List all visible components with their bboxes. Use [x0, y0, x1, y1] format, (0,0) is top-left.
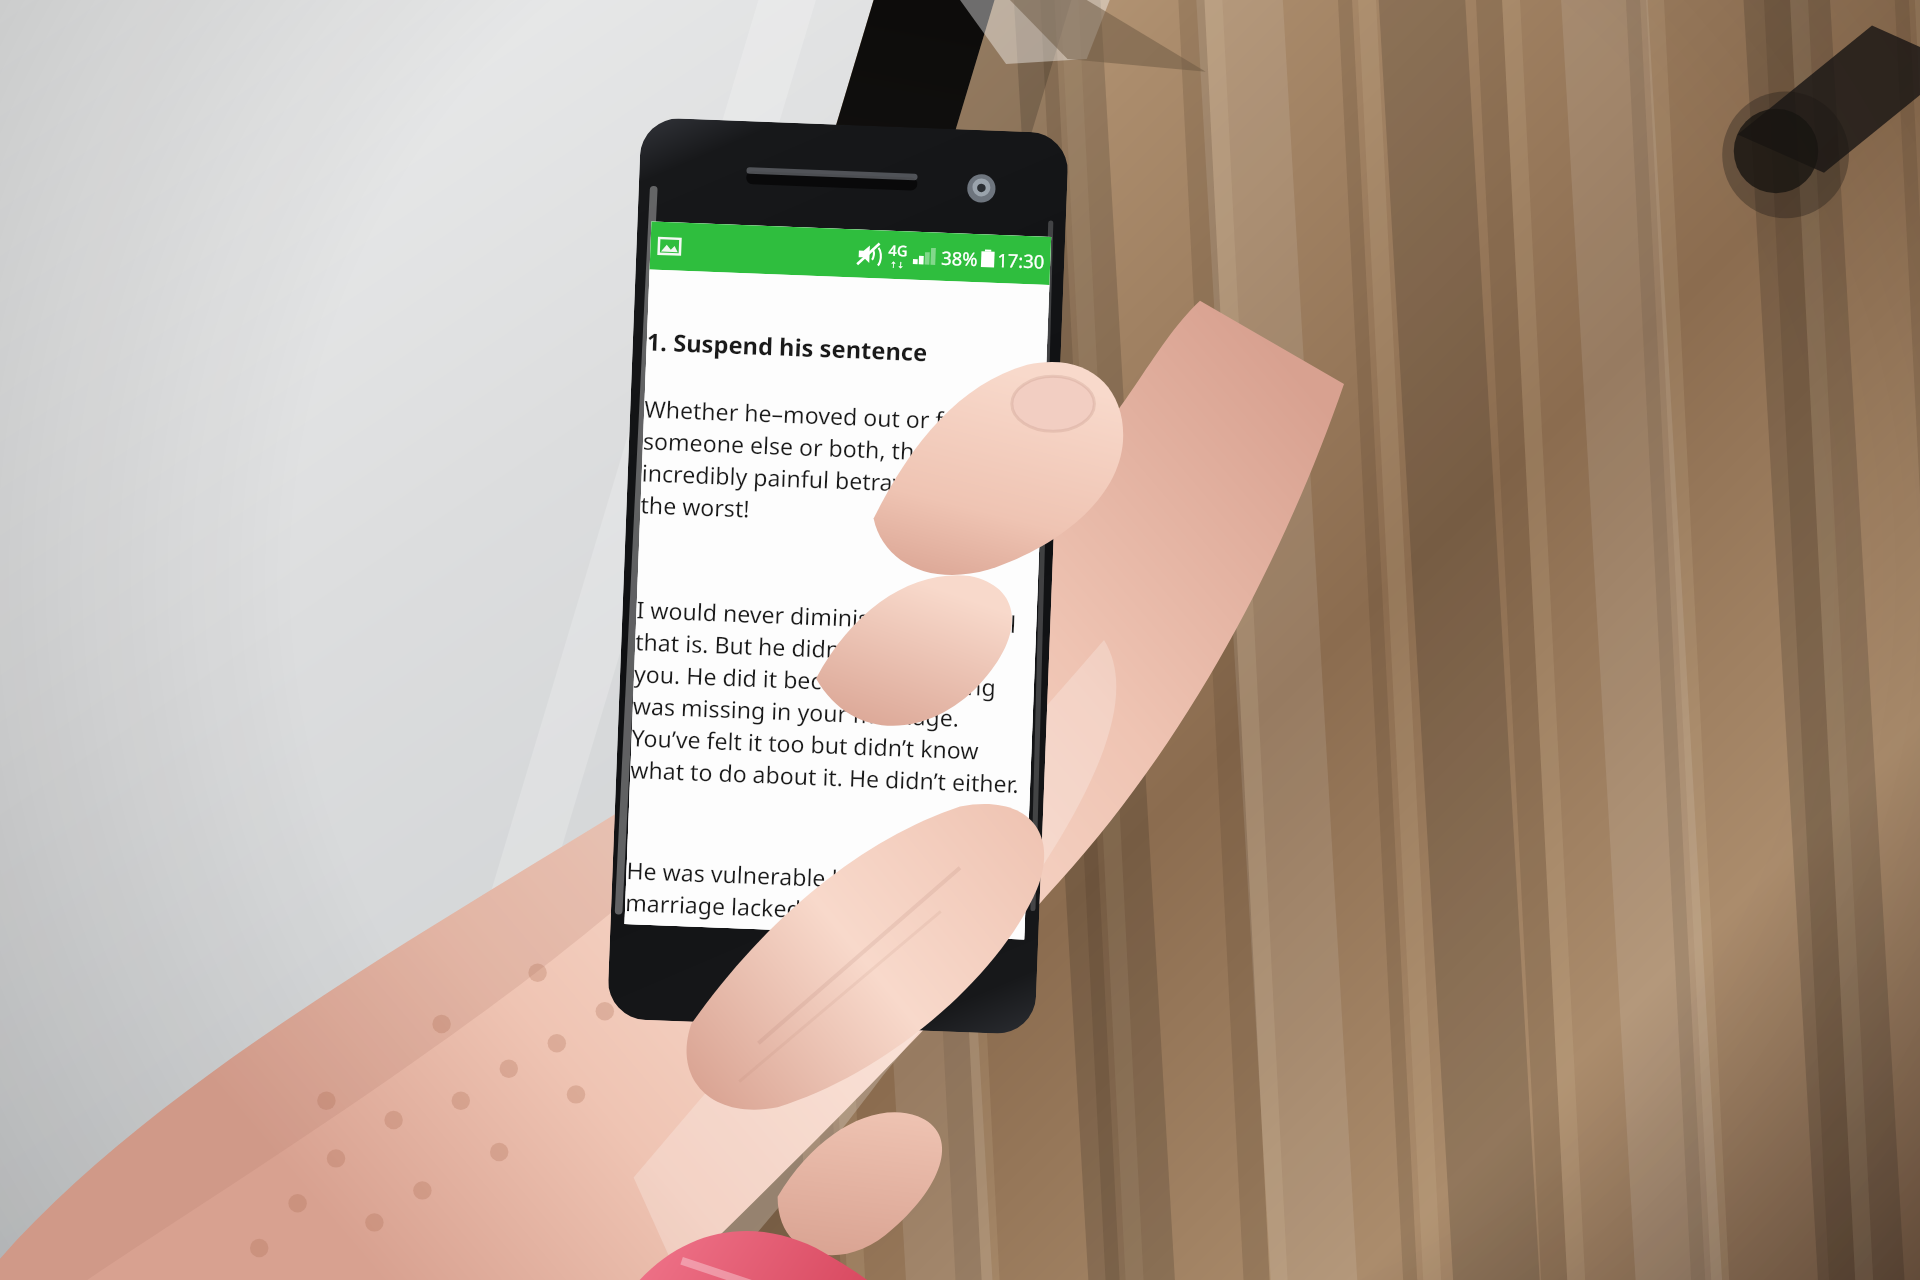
- staticText: He was vulnerable because your marriage …: [624, 854, 1027, 939]
- button[interactable]: Screenshot notification: [650, 222, 1051, 285]
- staticText: ↑↓: [890, 260, 905, 270]
- staticText: 1. Suspend his sentence temporarily: [646, 325, 1047, 373]
- staticText: 38%: [941, 245, 979, 271]
- staticText: 4G: [888, 240, 908, 260]
- staticText: I would never diminish how hurtful that …: [630, 593, 1037, 800]
- other: Screenshot notification: [655, 232, 684, 261]
- staticText: 17:30: [997, 247, 1046, 274]
- staticText: Whether he–moved out or found someone el…: [640, 392, 1045, 536]
